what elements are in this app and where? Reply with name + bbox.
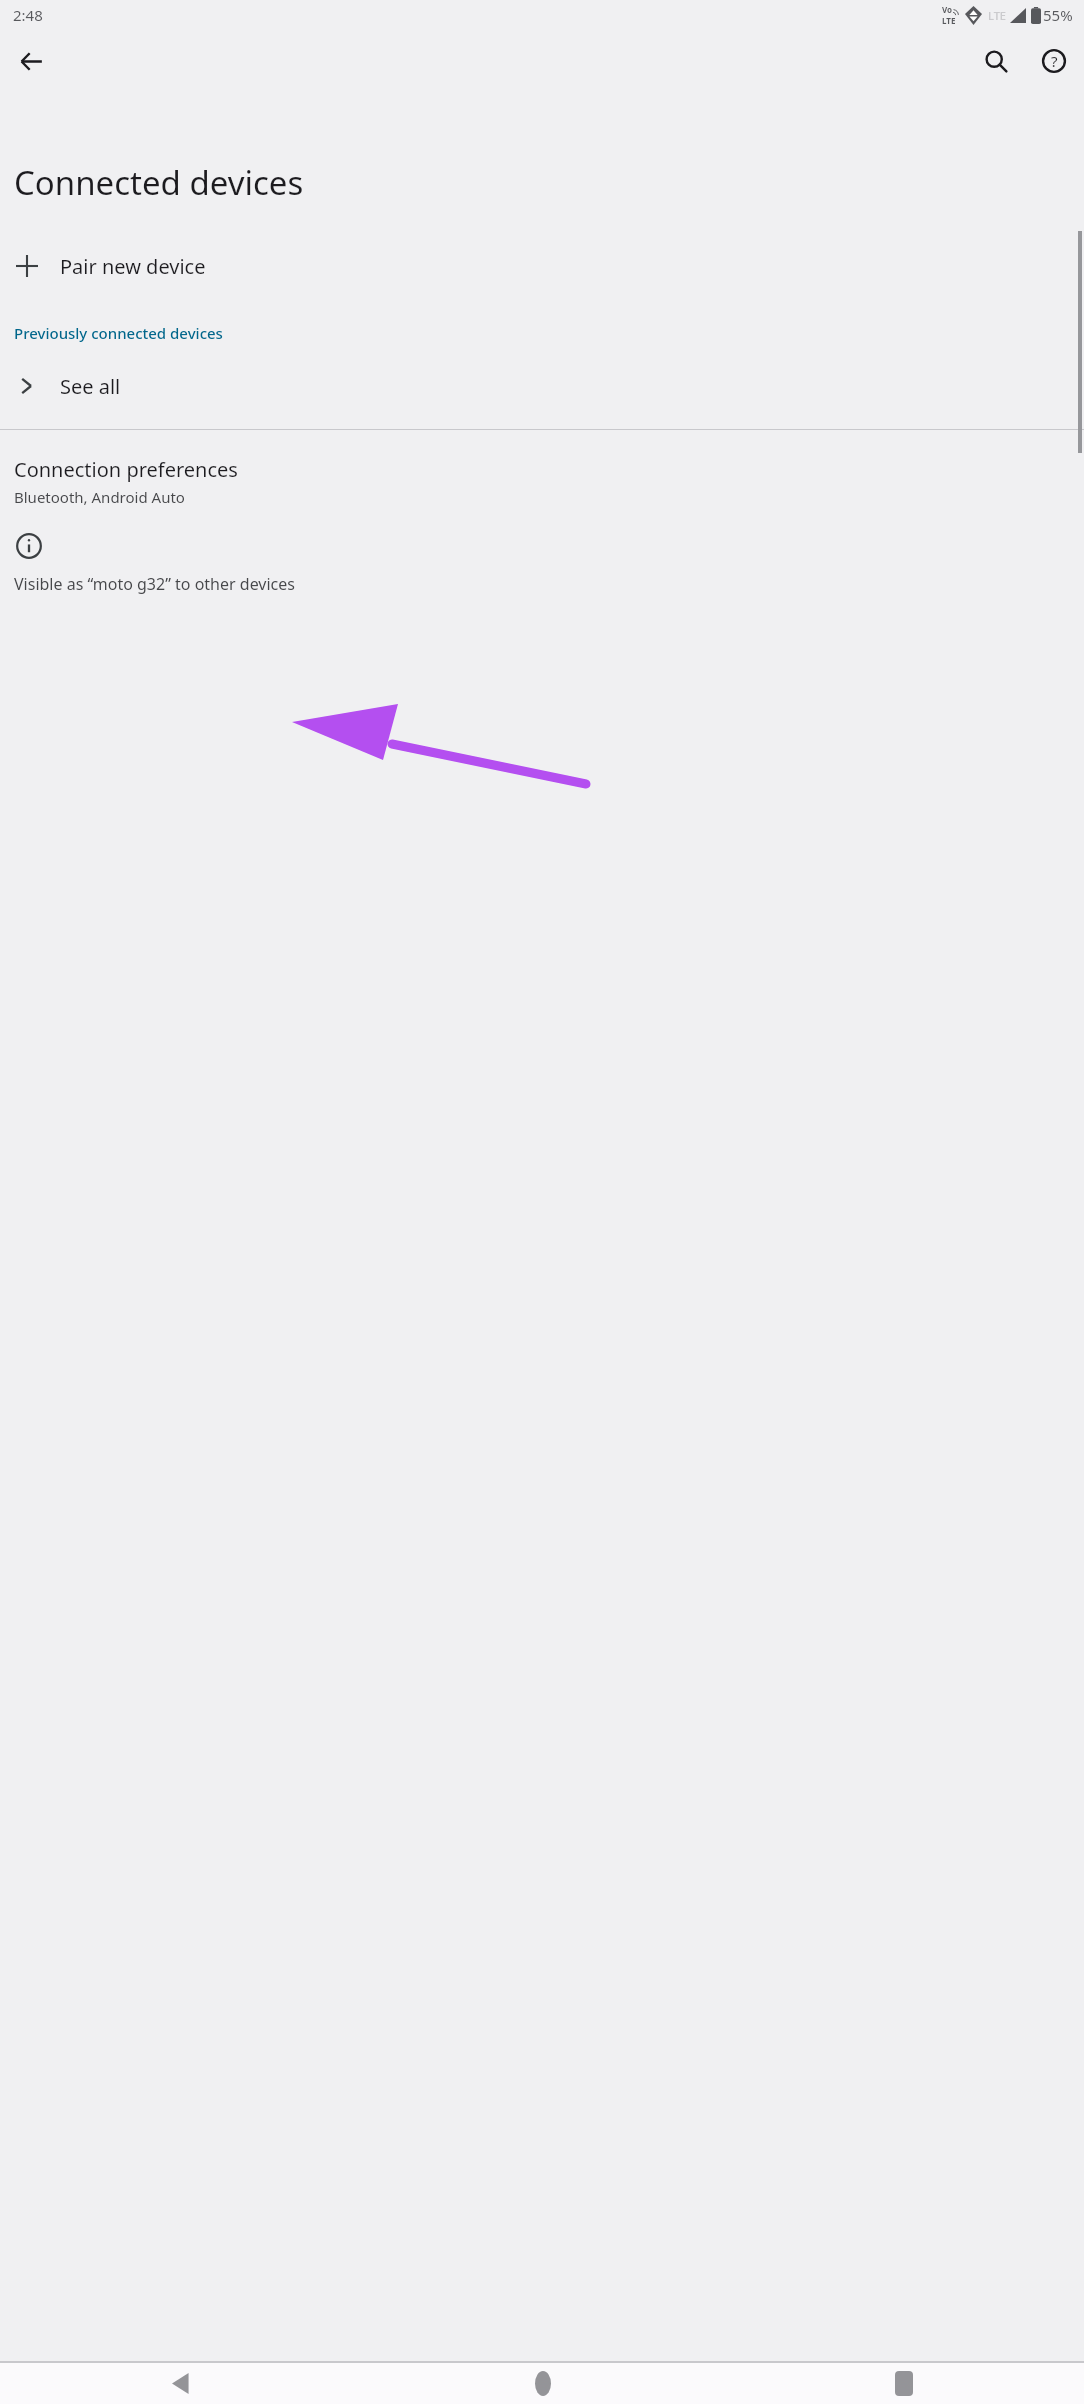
staticText: Connection preferences (14, 456, 238, 483)
button[interactable]: Help (1030, 37, 1078, 85)
button[interactable]: Back (0, 2363, 362, 2404)
staticText: LTE (942, 15, 956, 26)
button[interactable]: Back (7, 37, 55, 85)
staticText: Visible as “moto g32” to other devices (14, 573, 295, 595)
button[interactable]: Recents (723, 2363, 1084, 2404)
button[interactable]: Connection preferences (0, 452, 1084, 515)
button[interactable]: Search (972, 37, 1020, 85)
staticText: LTE (988, 8, 1006, 23)
button[interactable]: Pair new device (0, 237, 1084, 295)
staticText: See all (60, 373, 121, 400)
staticText: Vo (942, 4, 953, 15)
staticText: Connected devices (14, 160, 304, 205)
staticText: Pair new device (60, 253, 206, 280)
staticText: 55% (1043, 5, 1073, 25)
staticText: Bluetooth, Android Auto (14, 487, 185, 507)
staticText: 2:48 (13, 5, 43, 25)
staticText: ? (1051, 51, 1058, 71)
button[interactable]: Home (362, 2363, 723, 2404)
button[interactable]: See all (0, 355, 1084, 417)
staticText: Previously connected devices (14, 323, 223, 343)
